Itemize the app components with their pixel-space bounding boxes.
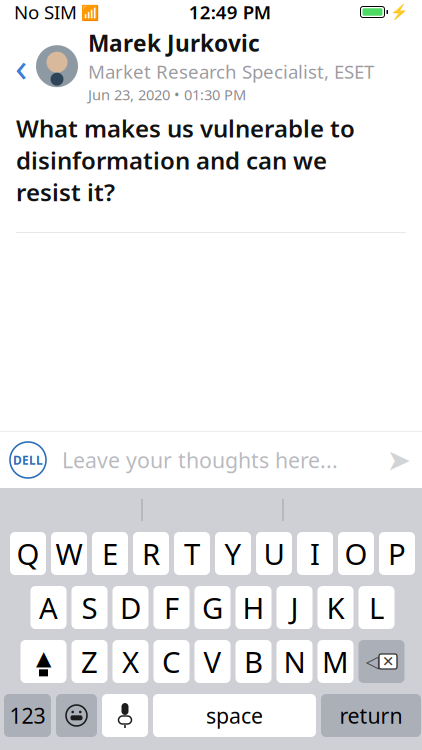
staticText: Q — [16, 534, 39, 573]
staticText: DELL — [13, 452, 43, 468]
button[interactable]: I — [297, 532, 333, 575]
staticText: ▲ — [36, 647, 51, 669]
staticText: Z — [81, 642, 98, 681]
button[interactable]: 123 — [4, 694, 51, 737]
button[interactable]: K — [317, 586, 353, 629]
staticText: H — [242, 588, 264, 627]
staticText: 12:49 PM — [189, 0, 271, 24]
button[interactable]: Shift — [20, 640, 66, 683]
staticText: D — [120, 588, 141, 627]
staticText: return — [339, 701, 402, 730]
button[interactable]: G — [194, 586, 230, 629]
button[interactable]: Dictate — [102, 694, 148, 737]
button[interactable]: F — [153, 586, 189, 629]
staticText: ◁ — [366, 652, 379, 671]
button[interactable]: E — [92, 532, 128, 575]
staticText: S — [81, 588, 97, 627]
staticText: ⚡ — [390, 4, 408, 20]
staticText: space — [206, 701, 263, 730]
staticText: E — [102, 534, 118, 573]
button[interactable]: space — [153, 694, 316, 737]
staticText: K — [326, 588, 344, 627]
staticText: O — [344, 534, 367, 573]
button[interactable]: V — [194, 640, 230, 683]
staticText: J — [290, 588, 298, 627]
staticText: T — [184, 534, 200, 573]
button[interactable]: return — [321, 694, 421, 737]
button[interactable]: D — [112, 586, 148, 629]
button[interactable]: U — [256, 532, 292, 575]
staticText: W — [55, 534, 82, 573]
staticText: P — [388, 534, 406, 573]
staticText: Y — [224, 534, 241, 573]
button[interactable]: Delete — [358, 640, 404, 683]
staticText: V — [203, 642, 221, 681]
button[interactable]: A — [30, 586, 66, 629]
staticText: B — [244, 642, 263, 681]
staticText: No SIM — [14, 0, 77, 24]
button[interactable]: O — [338, 532, 374, 575]
button[interactable]: S — [71, 586, 107, 629]
button[interactable]: L — [358, 586, 394, 629]
staticText: 📶 — [77, 2, 99, 22]
staticText: C — [162, 642, 181, 681]
staticText: ‹ — [15, 40, 27, 93]
button[interactable]: X — [112, 640, 148, 683]
button[interactable]: J — [276, 586, 312, 629]
staticText: U — [263, 534, 284, 573]
staticText: 123 — [9, 701, 45, 730]
button[interactable]: Z — [71, 640, 107, 683]
button[interactable]: R — [133, 532, 169, 575]
button[interactable]: M — [317, 640, 353, 683]
button[interactable]: W — [51, 532, 87, 575]
staticText: N — [283, 642, 305, 681]
button[interactable]: C — [153, 640, 189, 683]
button[interactable]: Emoji — [56, 694, 97, 737]
staticText: M — [322, 642, 349, 681]
staticText: R — [142, 534, 160, 573]
staticText: Jun 23, 2020 • 01:30 PM — [88, 85, 246, 104]
staticText: I — [310, 534, 320, 573]
staticText: F — [164, 588, 179, 627]
button[interactable]: H — [235, 586, 271, 629]
button[interactable]: Leave your thoughts here... — [46, 438, 376, 482]
button[interactable]: B — [235, 640, 271, 683]
staticText: L — [369, 588, 384, 627]
staticText: Marek Jurkovic — [88, 28, 260, 58]
button[interactable]: Q — [10, 532, 46, 575]
staticText: ➤ — [386, 443, 411, 477]
button[interactable]: Y — [215, 532, 251, 575]
staticText: Market Research Specialist, ESET — [88, 59, 374, 84]
button[interactable]: Back — [6, 44, 36, 88]
staticText: What makes us vulnerable to disinformati… — [16, 112, 355, 208]
button[interactable]: T — [174, 532, 210, 575]
staticText: X — [122, 642, 139, 681]
button[interactable]: Send — [376, 438, 422, 482]
staticText: ✕ — [382, 653, 394, 670]
staticText: G — [202, 588, 223, 627]
button[interactable]: N — [276, 640, 312, 683]
staticText: Leave your thoughts here... — [62, 446, 338, 474]
staticText: A — [39, 588, 58, 627]
button[interactable]: P — [379, 532, 415, 575]
